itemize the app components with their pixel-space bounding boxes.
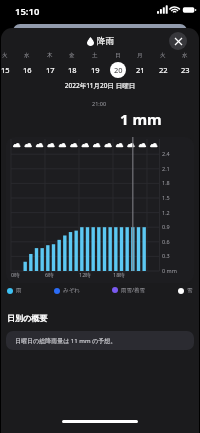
staticText: 6時	[45, 271, 54, 279]
staticText: 22	[159, 65, 168, 75]
button[interactable]: 雨	[7, 287, 22, 294]
staticText: 雨雪/着雪	[121, 286, 146, 294]
staticText: 1.5	[162, 194, 170, 201]
staticText: 21:00	[92, 100, 107, 107]
staticText: 月	[137, 52, 143, 59]
staticText: 雨	[16, 287, 22, 294]
staticText: 木	[47, 52, 53, 59]
staticText: 1.8	[162, 179, 170, 186]
staticText: 0.3	[162, 252, 170, 259]
staticText: 日曜日の総降雨量は 11 mm の予想。	[15, 337, 117, 345]
button[interactable]: 日	[107, 52, 129, 79]
staticText: 2.1	[162, 165, 170, 172]
staticText: 雪	[187, 287, 193, 294]
staticText: 1.2	[162, 209, 170, 216]
button[interactable]: 金	[61, 52, 83, 79]
staticText: 0.9	[162, 223, 170, 230]
staticText: 1 mm	[120, 109, 162, 129]
staticText: 降雨	[97, 36, 114, 47]
button[interactable]: 月	[129, 52, 151, 79]
staticText: 20	[114, 65, 123, 75]
staticText: 金	[69, 52, 75, 59]
button[interactable]: 土	[84, 52, 106, 79]
staticText: 2022年11月20日 日曜日	[1, 81, 199, 90]
staticText: みぞれ	[63, 287, 80, 294]
button[interactable]: みぞれ	[54, 287, 80, 294]
staticText: 2.4	[162, 150, 170, 157]
staticText: 18	[68, 65, 77, 75]
button[interactable]: Close	[169, 32, 187, 50]
staticText: 23	[181, 65, 190, 75]
staticText: 17	[46, 65, 55, 75]
staticText: 12時	[79, 271, 91, 279]
button[interactable]: 木	[39, 52, 61, 79]
staticText: 18時	[113, 271, 125, 279]
button[interactable]: 火	[152, 52, 174, 79]
button[interactable]: 水	[16, 52, 38, 79]
button[interactable]: 雪	[178, 287, 193, 294]
staticText: 火	[2, 52, 8, 59]
staticText: 日	[115, 52, 121, 59]
button[interactable]: 火	[1, 52, 16, 79]
staticText: 16	[23, 65, 32, 75]
staticText: 日別の概要	[7, 313, 48, 323]
staticText: 水	[182, 52, 188, 59]
staticText: 0時	[11, 271, 20, 279]
staticText: 水	[24, 52, 30, 59]
button[interactable]: 雨雪/着雪	[112, 286, 146, 294]
staticText: 0 mm	[162, 267, 177, 274]
staticText: 15	[1, 65, 10, 75]
staticText: 19	[91, 65, 100, 75]
staticText: 火	[160, 52, 166, 59]
button[interactable]: 水	[174, 52, 196, 79]
staticText: 21	[136, 65, 145, 75]
staticText: 15:10	[15, 5, 40, 18]
button[interactable]: 日曜日の総降雨量は 11 mm の予想。	[6, 331, 194, 350]
staticText: 0.6	[162, 238, 170, 245]
staticText: 土	[92, 52, 98, 59]
